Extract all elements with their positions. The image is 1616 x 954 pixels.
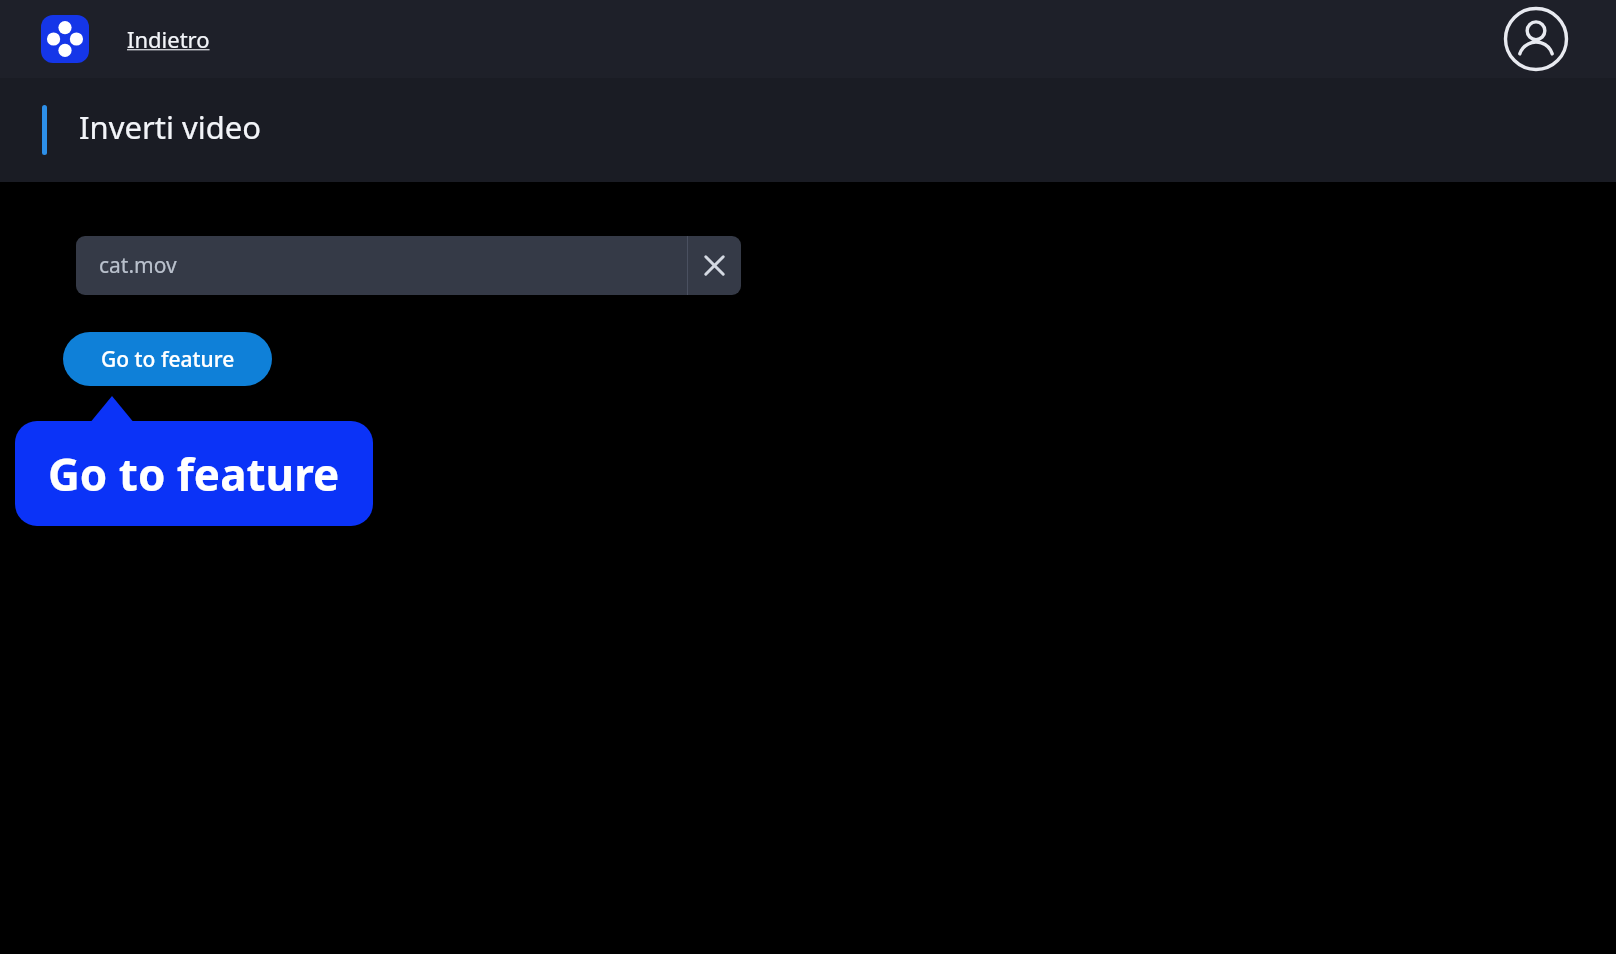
button[interactable]: cat.mov bbox=[76, 236, 687, 295]
staticText: Go to feature bbox=[48, 444, 340, 504]
staticText: Inverti video bbox=[79, 106, 262, 148]
button[interactable]: Home logo bbox=[41, 15, 89, 63]
staticText: cat.mov bbox=[99, 251, 177, 280]
button[interactable]: Account bbox=[1503, 6, 1569, 72]
button[interactable]: Go to feature bbox=[15, 421, 373, 526]
button[interactable]: Go to feature bbox=[63, 332, 272, 386]
staticText: Indietro bbox=[127, 24, 210, 54]
button[interactable]: Clear file bbox=[688, 236, 741, 295]
staticText: Go to feature bbox=[101, 345, 235, 374]
button[interactable]: Indietro bbox=[125, 18, 212, 60]
